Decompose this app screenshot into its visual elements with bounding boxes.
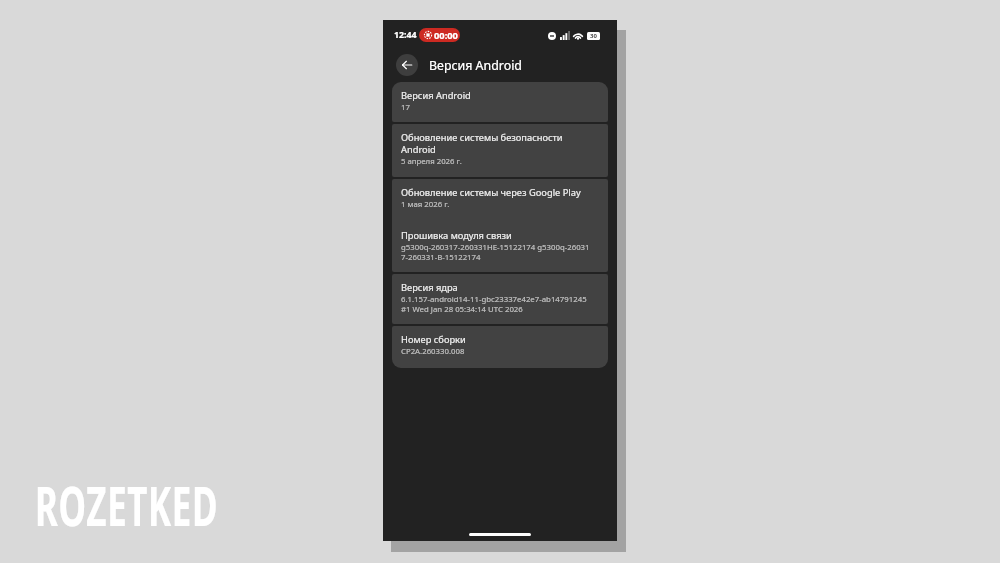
- button[interactable]: Версия Android: [392, 82, 608, 122]
- staticText: Прошивка модуля связи: [401, 229, 512, 242]
- other: Recording: [424, 31, 432, 39]
- button[interactable]: Версия ядра: [392, 274, 608, 324]
- staticText: Обновление системы через Google Play: [401, 186, 581, 199]
- other: Mobile signal: [560, 31, 570, 40]
- staticText: Версия Android: [401, 89, 471, 102]
- other: Do not disturb: [548, 32, 556, 40]
- other: Wi-Fi: [573, 31, 583, 40]
- staticText: ROZETKED: [35, 468, 218, 542]
- button[interactable]: Номер сборки: [392, 326, 608, 368]
- staticText: 1 мая 2026 г.: [401, 199, 450, 210]
- button[interactable]: Home: [469, 533, 531, 536]
- other: Battery 30 percent: [587, 32, 600, 40]
- staticText: g5300q-260317-260331HE-15122174 g5300q-2…: [401, 242, 590, 262]
- staticText: Версия ядра: [401, 281, 458, 294]
- staticText: Номер сборки: [401, 333, 466, 346]
- button[interactable]: Back: [396, 54, 418, 76]
- button[interactable]: Обновление системы безопасности Android: [392, 124, 608, 177]
- staticText: 00:00: [434, 29, 458, 42]
- staticText: Версия Android: [429, 57, 522, 74]
- button[interactable]: Прошивка модуля связи: [392, 222, 608, 272]
- staticText: 30: [590, 32, 597, 40]
- button[interactable]: Recording: [419, 28, 460, 42]
- staticText: 17: [401, 102, 410, 113]
- staticText: CP2A.260330.008: [401, 346, 465, 357]
- staticText: 5 апреля 2026 г.: [401, 156, 462, 167]
- staticText: 12:44: [394, 29, 417, 41]
- staticText: Обновление системы безопасности Android: [401, 131, 599, 156]
- staticText: 6.1.157-android14-11-gbc23337e42e7-ab147…: [401, 294, 587, 314]
- button[interactable]: Обновление системы через Google Play: [392, 179, 608, 222]
